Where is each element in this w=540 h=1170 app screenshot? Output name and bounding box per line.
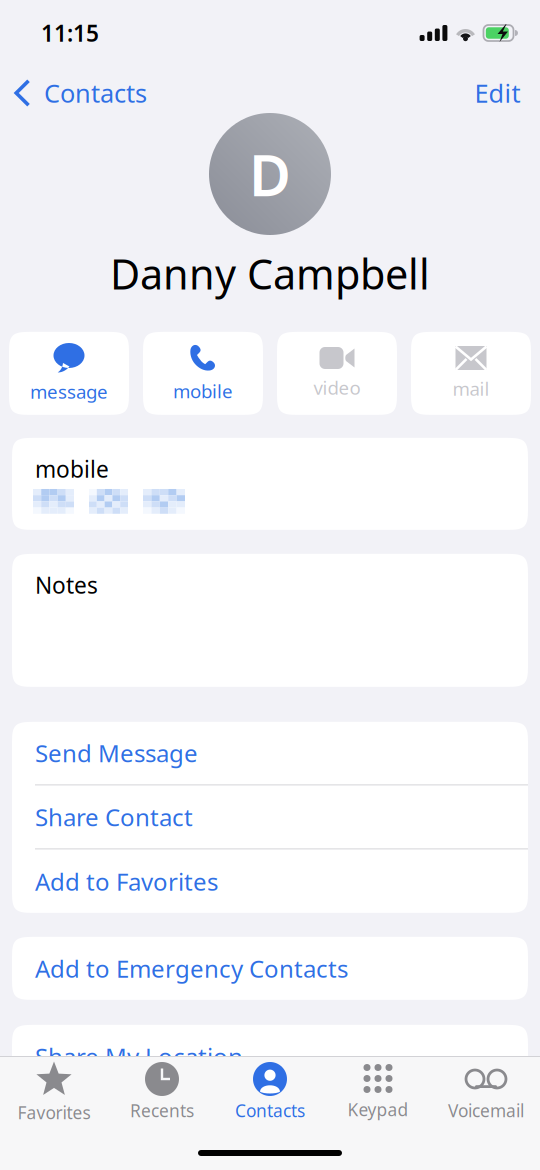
- staticText: mobile: [173, 378, 233, 403]
- staticText: message: [30, 379, 108, 404]
- button[interactable]: Send Message: [12, 721, 528, 784]
- staticText: video: [313, 375, 360, 400]
- staticText: Danny Campbell: [110, 246, 430, 301]
- staticText: Share Contact: [35, 801, 193, 833]
- button[interactable]: Edit: [459, 61, 536, 125]
- staticText: Contacts: [235, 1099, 305, 1122]
- staticText: Recents: [130, 1099, 194, 1122]
- staticText: Edit: [474, 76, 520, 110]
- staticText: Add to Emergency Contacts: [35, 952, 348, 984]
- staticText: 11:15: [41, 18, 99, 48]
- staticText: mobile: [35, 454, 109, 484]
- button[interactable]: mail: [411, 332, 531, 415]
- button[interactable]: Contacts: [0, 61, 165, 125]
- staticText: Share My Location: [35, 1040, 243, 1072]
- staticText: Favorites: [17, 1101, 90, 1124]
- staticText: Keypad: [347, 1098, 408, 1121]
- staticText: Send Message: [35, 737, 198, 769]
- button[interactable]: Contacts: [216, 1062, 324, 1126]
- button[interactable]: Voicemail: [432, 1062, 540, 1126]
- staticText: mail: [452, 376, 489, 401]
- button[interactable]: video: [277, 332, 397, 415]
- staticText: Add to Favorites: [35, 865, 218, 897]
- button[interactable]: Recents: [108, 1062, 216, 1126]
- staticText: Notes: [35, 570, 98, 600]
- button[interactable]: Share My Location: [12, 1025, 528, 1088]
- button[interactable]: message: [9, 332, 129, 415]
- button[interactable]: Share Contact: [12, 785, 528, 848]
- staticText: D: [249, 136, 291, 212]
- staticText: Contacts: [44, 76, 147, 110]
- button[interactable]: Keypad: [324, 1062, 432, 1126]
- button[interactable]: mobile: [143, 332, 263, 415]
- button[interactable]: Add to Emergency Contacts: [12, 937, 528, 1000]
- button[interactable]: Add to Favorites: [12, 849, 528, 913]
- button[interactable]: Favorites: [0, 1062, 108, 1126]
- staticText: Voicemail: [448, 1099, 524, 1122]
